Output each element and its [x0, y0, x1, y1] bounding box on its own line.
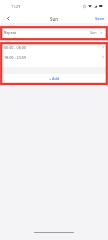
staticText: 00:00 - 06:00	[4, 45, 26, 50]
staticText: 11:29	[11, 4, 21, 9]
staticText: 18:00 - 23:59	[4, 55, 26, 60]
staticText: Save	[95, 16, 105, 22]
button[interactable]: Repeat	[0, 26, 108, 38]
button[interactable]: + Add	[0, 74, 108, 83]
button[interactable]: 18:00 - 23:59	[0, 52, 108, 62]
staticText: + Add	[49, 76, 60, 81]
staticText: Repeat	[4, 30, 17, 35]
button[interactable]: Save	[95, 16, 105, 22]
button[interactable]: 00:00 - 06:00	[0, 42, 108, 52]
staticText: Sun	[50, 16, 58, 22]
staticText: Sun	[90, 30, 97, 35]
button[interactable]: Back	[4, 14, 13, 23]
